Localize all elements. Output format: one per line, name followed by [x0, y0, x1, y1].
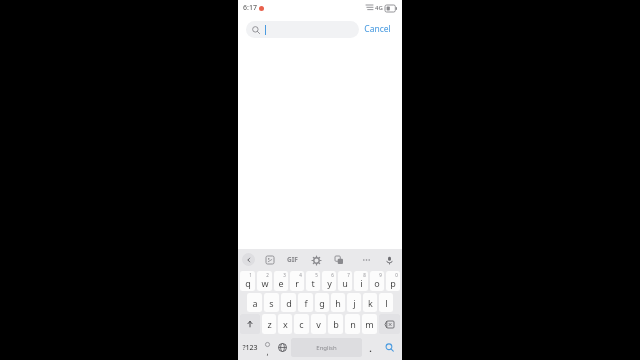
staticText: 6:17: [243, 3, 257, 13]
button[interactable]: l: [379, 293, 393, 312]
staticText: t: [311, 277, 315, 289]
button[interactable]: 3: [274, 271, 288, 291]
staticText: ?123: [242, 343, 258, 353]
staticText: 8: [363, 272, 366, 278]
staticText: English: [316, 344, 337, 352]
staticText: 2: [266, 272, 269, 278]
staticText: 9: [379, 272, 382, 278]
staticText: f: [304, 297, 308, 309]
staticText: u: [342, 277, 348, 289]
button[interactable]: [246, 21, 359, 38]
staticText: y: [327, 277, 332, 289]
button[interactable]: Back: [242, 253, 255, 266]
staticText: .: [369, 342, 372, 354]
button[interactable]: Change language: [275, 336, 290, 359]
staticText: j: [353, 297, 356, 309]
staticText: g: [319, 297, 325, 309]
staticText: h: [335, 297, 341, 309]
button[interactable]: x: [278, 314, 292, 334]
button[interactable]: More: [360, 256, 373, 264]
button[interactable]: d: [281, 293, 296, 312]
staticText: e: [278, 277, 284, 289]
staticText: 4G: [375, 4, 383, 12]
staticText: v: [316, 318, 321, 330]
staticText: l: [385, 297, 388, 309]
button[interactable]: 2: [257, 271, 272, 291]
button[interactable]: 6: [322, 271, 336, 291]
button[interactable]: 8: [354, 271, 368, 291]
staticText: 7: [347, 272, 350, 278]
button[interactable]: Comma and emoji: [260, 336, 275, 359]
button[interactable]: Shift: [240, 314, 260, 334]
staticText: i: [360, 277, 363, 289]
staticText: z: [267, 318, 272, 330]
button[interactable]: 9: [370, 271, 384, 291]
staticText: GIF: [287, 255, 298, 264]
staticText: p: [390, 277, 396, 289]
staticText: r: [295, 277, 299, 289]
button[interactable]: v: [311, 314, 326, 334]
staticText: d: [286, 297, 292, 309]
button[interactable]: English: [291, 338, 362, 357]
button[interactable]: Translate: [332, 253, 346, 267]
button[interactable]: Period: [363, 336, 378, 359]
button[interactable]: 1: [240, 271, 255, 291]
staticText: 3: [283, 272, 286, 278]
button[interactable]: n: [345, 314, 360, 334]
staticText: w: [261, 277, 269, 289]
staticText: s: [269, 297, 274, 309]
staticText: b: [333, 318, 339, 330]
button[interactable]: Settings: [309, 253, 323, 267]
button[interactable]: f: [298, 293, 313, 312]
staticText: Cancel: [364, 23, 391, 35]
button[interactable]: 4: [290, 271, 304, 291]
staticText: 0: [395, 272, 398, 278]
button[interactable]: b: [328, 314, 343, 334]
button[interactable]: Search: [378, 336, 401, 359]
staticText: k: [368, 297, 373, 309]
button[interactable]: Cancel: [359, 20, 396, 38]
staticText: 1: [249, 272, 252, 278]
staticText: 5: [315, 272, 318, 278]
button[interactable]: k: [363, 293, 377, 312]
staticText: m: [365, 318, 374, 330]
staticText: c: [299, 318, 304, 330]
button[interactable]: a: [247, 293, 262, 312]
button[interactable]: Voice input: [382, 253, 396, 267]
button[interactable]: 0: [386, 271, 400, 291]
button[interactable]: GIF: [285, 253, 300, 266]
button[interactable]: Backspace: [379, 314, 400, 334]
staticText: x: [283, 318, 288, 330]
button[interactable]: g: [315, 293, 329, 312]
button[interactable]: s: [264, 293, 279, 312]
button[interactable]: 5: [306, 271, 320, 291]
staticText: a: [252, 297, 258, 309]
button[interactable]: h: [331, 293, 345, 312]
button[interactable]: z: [262, 314, 276, 334]
button[interactable]: 7: [338, 271, 352, 291]
staticText: ,: [266, 346, 269, 357]
staticText: n: [350, 318, 356, 330]
button[interactable]: ?123: [239, 336, 260, 359]
staticText: 4: [299, 272, 302, 278]
button[interactable]: m: [362, 314, 377, 334]
button[interactable]: Stickers: [263, 253, 277, 267]
button[interactable]: c: [294, 314, 309, 334]
staticText: q: [245, 277, 251, 289]
button[interactable]: j: [347, 293, 361, 312]
staticText: 6: [331, 272, 334, 278]
staticText: o: [374, 277, 380, 289]
